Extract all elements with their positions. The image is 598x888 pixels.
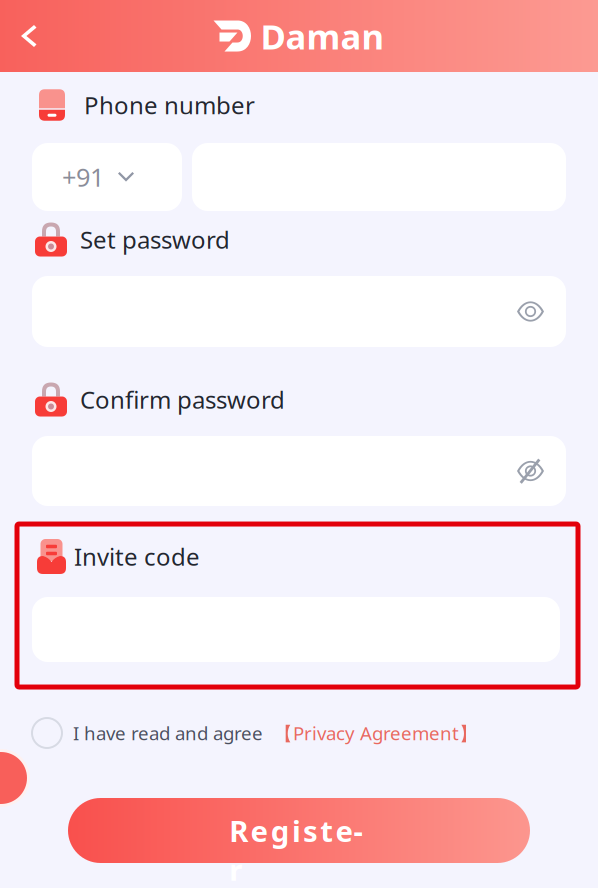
staticText: I have read and agree [73, 721, 263, 745]
staticText: Invite code [74, 541, 200, 572]
staticText: 【Privacy Agreement】 [274, 721, 478, 745]
button[interactable]: 【Privacy Agreement】 [274, 721, 478, 745]
button[interactable]: +91 [32, 143, 182, 211]
button[interactable] [32, 436, 566, 506]
staticText: Daman [260, 13, 384, 59]
staticText: +91 [62, 160, 104, 194]
staticText: Confirm password [80, 384, 285, 415]
staticText: Set password [80, 224, 230, 255]
button[interactable]: Register [68, 798, 530, 863]
staticText: Phone number [84, 89, 255, 121]
button[interactable]: Agree to the privacy agreement [32, 718, 62, 748]
button[interactable]: Back [0, 6, 58, 66]
button[interactable]: Customer service [0, 749, 30, 807]
button[interactable] [32, 276, 566, 347]
staticText: Register [229, 811, 369, 850]
